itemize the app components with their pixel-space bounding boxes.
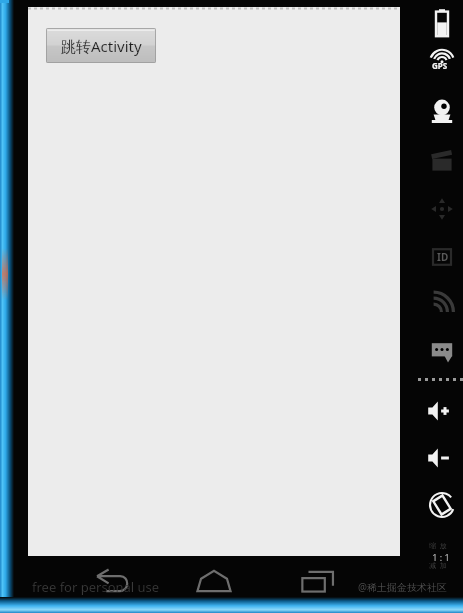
staticText: 1 : 1 [432, 551, 450, 563]
button[interactable]: GPS [427, 48, 457, 78]
staticText: 缩 放 [429, 541, 447, 551]
staticText: 跳转Activity [61, 36, 142, 56]
button[interactable]: Network [427, 288, 457, 318]
staticText: ID [437, 250, 449, 264]
button[interactable]: Messages [427, 336, 457, 366]
staticText: GPS [432, 60, 448, 71]
staticText: 减 加 [429, 561, 447, 571]
button[interactable]: Battery [427, 8, 457, 38]
staticText: free for personal use [32, 578, 160, 596]
button[interactable]: Device ID [427, 242, 457, 272]
button[interactable]: Rotate [427, 490, 457, 520]
button[interactable]: Recent apps [290, 563, 346, 599]
button[interactable]: Volume down [424, 443, 454, 473]
button[interactable]: 跳转Activity [46, 28, 156, 63]
button[interactable]: Record screen [427, 146, 457, 176]
button[interactable]: Camera [427, 96, 457, 126]
staticText: @稀土掘金技术社区 [358, 580, 447, 594]
button[interactable]: Home [186, 563, 242, 599]
button[interactable]: D-pad [427, 194, 457, 224]
button[interactable]: Back [84, 563, 140, 599]
button[interactable]: Volume up [424, 396, 454, 426]
